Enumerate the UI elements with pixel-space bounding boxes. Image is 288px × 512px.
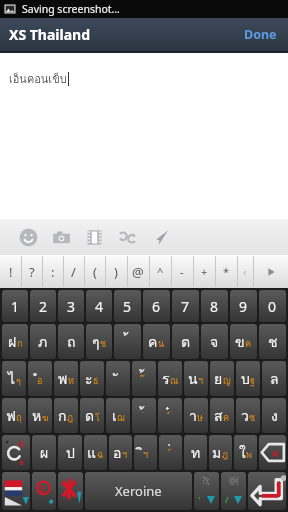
button[interactable]: ฝ bbox=[2, 324, 28, 359]
button[interactable]: Enter bbox=[248, 472, 286, 510]
staticText: เอ็นคอนเข็บ bbox=[9, 70, 67, 87]
button[interactable]: ล bbox=[262, 361, 286, 396]
button[interactable]: ค bbox=[143, 324, 170, 359]
button[interactable]: Insert emoji bbox=[12, 219, 45, 255]
button[interactable]: Attach link bbox=[111, 219, 144, 255]
button[interactable]: ‹ bbox=[237, 255, 253, 288]
button[interactable]: 5 bbox=[114, 290, 141, 322]
button[interactable]: ไ bbox=[2, 361, 26, 396]
button[interactable]: 0 bbox=[259, 290, 286, 322]
button[interactable]: ้ bbox=[114, 324, 141, 359]
button[interactable]: ส bbox=[210, 398, 234, 433]
button[interactable]: ๋ bbox=[158, 398, 182, 433]
staticText: ไ bbox=[8, 368, 16, 390]
button[interactable]: อ bbox=[109, 435, 132, 470]
button[interactable]: ต bbox=[172, 324, 199, 359]
button[interactable]: Shift bbox=[2, 435, 30, 470]
button[interactable]: ) bbox=[105, 255, 127, 288]
staticText: ห bbox=[32, 405, 42, 427]
button[interactable]: : bbox=[42, 255, 63, 288]
button[interactable]: ๆ bbox=[86, 324, 112, 359]
button[interactable]: Currency bbox=[32, 472, 56, 510]
staticText: ผ bbox=[40, 442, 49, 464]
staticText: × bbox=[271, 443, 280, 463]
button[interactable]: Change language bbox=[2, 472, 30, 510]
button[interactable]: 4 bbox=[86, 290, 112, 322]
staticText: อ bbox=[113, 442, 122, 464]
button[interactable]: ง bbox=[262, 398, 286, 433]
button[interactable]: ช bbox=[259, 324, 286, 359]
button[interactable]: 3 bbox=[58, 290, 84, 322]
button[interactable]: Take photo bbox=[45, 219, 78, 255]
button[interactable]: 9 bbox=[230, 290, 257, 322]
button[interactable]: น bbox=[184, 361, 208, 396]
button[interactable]: 8 bbox=[201, 290, 228, 322]
button[interactable]: ว bbox=[236, 398, 260, 433]
button[interactable]: ิ bbox=[134, 435, 157, 470]
button[interactable]: ่ bbox=[159, 435, 182, 470]
button[interactable]: ฟ bbox=[2, 398, 26, 433]
button[interactable]: ะ bbox=[80, 361, 104, 396]
button[interactable]: 2 bbox=[30, 290, 56, 322]
button[interactable]: ใ bbox=[234, 435, 257, 470]
button[interactable]: ป bbox=[58, 435, 82, 470]
button[interactable]: พ bbox=[54, 361, 78, 396]
staticText: ท bbox=[191, 442, 201, 464]
button[interactable]: ร bbox=[158, 361, 182, 396]
button[interactable]: ํ bbox=[28, 361, 52, 396]
button[interactable]: Backspace bbox=[259, 435, 286, 470]
button[interactable]: Symbols bbox=[221, 472, 246, 510]
button[interactable]: Symbols bbox=[194, 472, 219, 510]
button[interactable]: Send location bbox=[144, 219, 177, 255]
button[interactable]: @ bbox=[127, 255, 149, 288]
staticText: 9 bbox=[239, 297, 248, 316]
button[interactable]: Xeroine bbox=[85, 472, 192, 510]
staticText: ล bbox=[270, 368, 279, 390]
button[interactable]: - bbox=[171, 255, 193, 288]
button[interactable]: / bbox=[63, 255, 84, 288]
button[interactable]: ^ bbox=[149, 255, 171, 288]
button[interactable]: า bbox=[184, 398, 208, 433]
button[interactable]: ั bbox=[106, 361, 130, 396]
button[interactable]: ห bbox=[28, 398, 52, 433]
staticText: อ bbox=[37, 374, 43, 388]
button[interactable]: Next suggestions bbox=[253, 255, 288, 288]
button[interactable]: ท bbox=[184, 435, 207, 470]
button[interactable]: ภ bbox=[30, 324, 56, 359]
staticText: ด bbox=[85, 405, 95, 427]
button[interactable]: จ bbox=[201, 324, 228, 359]
button[interactable]: Done bbox=[233, 18, 288, 51]
button[interactable]: ด bbox=[80, 398, 104, 433]
button[interactable]: บ bbox=[236, 361, 260, 396]
button[interactable]: ย bbox=[210, 361, 234, 396]
button[interactable]: ้ bbox=[132, 361, 156, 396]
button[interactable]: ม bbox=[209, 435, 232, 470]
button[interactable]: ? bbox=[21, 255, 42, 288]
button[interactable]: เอ็นคอนเข็บ bbox=[0, 53, 288, 219]
staticText: เ bbox=[112, 405, 117, 427]
button[interactable]: Voice input bbox=[58, 472, 83, 510]
button[interactable]: 6 bbox=[143, 290, 170, 322]
staticText: ! bbox=[9, 263, 13, 281]
staticText: ญ bbox=[223, 374, 231, 388]
staticText: 3 bbox=[67, 297, 76, 316]
staticText: า bbox=[189, 405, 197, 427]
button[interactable]: ! bbox=[0, 255, 21, 288]
button[interactable]: ผ bbox=[32, 435, 56, 470]
button[interactable]: ก bbox=[54, 398, 78, 433]
button[interactable]: ข bbox=[230, 324, 257, 359]
button[interactable]: 1 bbox=[2, 290, 28, 322]
button[interactable]: * bbox=[215, 255, 237, 288]
button[interactable]: 7 bbox=[172, 290, 199, 322]
button[interactable]: ้ bbox=[132, 398, 156, 433]
staticText: E bbox=[40, 482, 46, 494]
button[interactable]: แ bbox=[84, 435, 107, 470]
staticText: แ bbox=[87, 442, 97, 464]
staticText: ท bbox=[68, 374, 74, 388]
button[interactable]: Attach video bbox=[78, 219, 111, 255]
staticText: ฐ bbox=[250, 374, 255, 388]
button[interactable]: เ bbox=[106, 398, 130, 433]
button[interactable]: + bbox=[193, 255, 215, 288]
button[interactable]: ถ bbox=[58, 324, 84, 359]
button[interactable]: ( bbox=[84, 255, 105, 288]
